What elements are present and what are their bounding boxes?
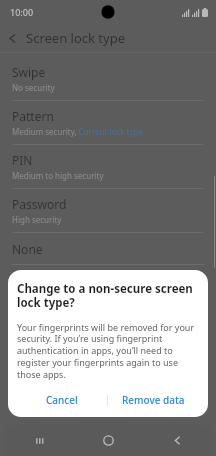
button[interactable]: Swipe <box>0 57 216 100</box>
staticText: Remove data <box>122 393 185 407</box>
staticText: 10:00 <box>10 6 34 18</box>
button[interactable]: Cancel <box>17 389 107 411</box>
staticText: Cancel <box>46 393 78 407</box>
staticText: Password <box>12 196 67 212</box>
button[interactable]: PIN <box>0 145 216 188</box>
staticText: No security <box>12 82 55 93</box>
staticText: Your fingerprints will be removed for yo… <box>17 321 199 381</box>
button[interactable]: Password <box>0 189 216 232</box>
staticText: Medium to high security <box>12 170 104 181</box>
button[interactable]: Recents <box>4 425 74 456</box>
staticText: Screen lock type <box>26 29 125 47</box>
button[interactable]: Pattern <box>0 101 216 144</box>
button[interactable]: None <box>0 233 216 264</box>
staticText: Change to a non-secure screen lock type? <box>17 281 199 310</box>
staticText: Pattern <box>12 108 54 124</box>
staticText: Medium security, Current lock type <box>12 126 143 137</box>
staticText: Biometrics <box>12 271 55 283</box>
button[interactable]: Home <box>74 425 143 456</box>
button[interactable]: Back <box>0 26 24 50</box>
staticText: High security <box>12 214 62 225</box>
button[interactable]: Remove data <box>108 389 199 411</box>
button[interactable]: Back <box>143 425 212 456</box>
staticText: PIN <box>12 152 33 168</box>
staticText: None <box>12 241 43 257</box>
staticText: Swipe <box>12 64 46 80</box>
